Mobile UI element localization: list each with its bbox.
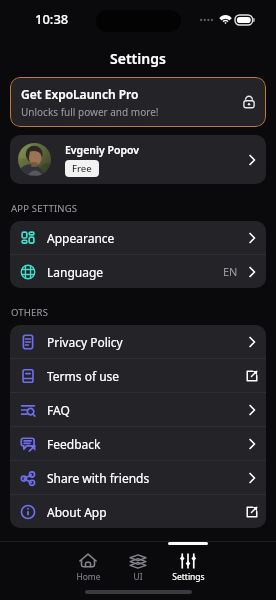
button[interactable]: Feedback: [10, 427, 266, 460]
staticText: Language: [47, 264, 104, 280]
staticText: Get ExpoLaunch Pro: [21, 86, 139, 102]
staticText: Settings: [172, 571, 205, 583]
staticText: Unlocks full power and more!: [21, 105, 159, 119]
button[interactable]: FAQ: [10, 393, 266, 426]
staticText: Home: [76, 571, 101, 583]
button[interactable]: Share with friends: [10, 461, 266, 494]
staticText: Settings: [110, 49, 166, 68]
button[interactable]: UI: [113, 542, 163, 583]
staticText: Free: [72, 162, 92, 175]
staticText: Appearance: [47, 230, 115, 246]
staticText: Share with friends: [47, 470, 150, 486]
staticText: EN: [223, 264, 238, 279]
button[interactable]: Get ExpoLaunch Pro: [10, 77, 266, 127]
button[interactable]: Home: [63, 542, 113, 583]
staticText: Feedback: [47, 436, 101, 452]
staticText: Evgeniy Popov: [65, 143, 139, 157]
staticText: APP SETTINGS: [11, 202, 78, 215]
staticText: About App: [47, 504, 107, 520]
button[interactable]: Terms of use: [10, 359, 266, 392]
staticText: 10:38: [35, 10, 69, 28]
staticText: OTHERS: [11, 306, 49, 319]
button[interactable]: Evgeniy Popov: [10, 135, 266, 184]
staticText: FAQ: [47, 402, 70, 418]
staticText: Privacy Policy: [47, 334, 123, 350]
button[interactable]: Settings: [163, 542, 213, 583]
button[interactable]: Appearance: [10, 221, 266, 254]
button[interactable]: About App: [10, 495, 266, 528]
staticText: UI: [133, 571, 143, 583]
button[interactable]: Privacy Policy: [10, 325, 266, 358]
staticText: Terms of use: [47, 368, 120, 384]
button[interactable]: Language: [10, 255, 266, 288]
